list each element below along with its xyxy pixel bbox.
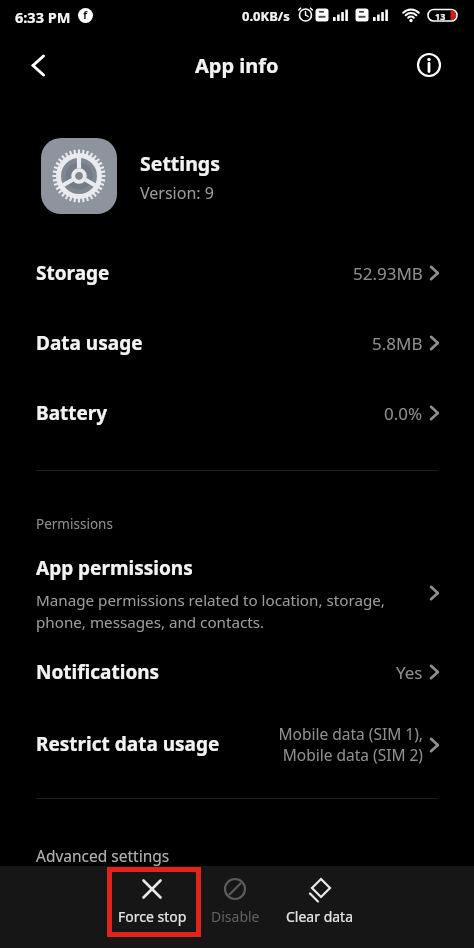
staticText: Mobile data (SIM 1), Mobile data (SIM 2) bbox=[278, 723, 423, 766]
staticText: Advanced settings bbox=[36, 845, 170, 866]
button[interactable]: App permissions bbox=[0, 540, 474, 645]
button[interactable] bbox=[408, 44, 450, 86]
staticText: Battery bbox=[36, 400, 108, 426]
button[interactable]: Disable bbox=[193, 866, 277, 948]
button[interactable]: Force stop bbox=[110, 866, 194, 948]
staticText: Yes bbox=[396, 661, 423, 684]
staticText: Permissions bbox=[36, 515, 113, 533]
staticText: Manage permissions related to location, … bbox=[36, 590, 385, 633]
staticText: 0.0KB/s bbox=[242, 7, 290, 25]
staticText: Settings bbox=[140, 150, 220, 177]
staticText: Clear data bbox=[286, 907, 354, 926]
staticText: 0.0% bbox=[384, 402, 423, 425]
button[interactable]: Clear data bbox=[278, 866, 362, 948]
button[interactable]: Battery bbox=[0, 378, 474, 448]
staticText: 52.93MB bbox=[353, 262, 423, 285]
staticText: 5.8MB bbox=[372, 332, 423, 355]
button[interactable]: Data usage bbox=[0, 308, 474, 378]
button[interactable]: Notifications bbox=[0, 637, 474, 707]
staticText: App permissions bbox=[36, 555, 193, 581]
staticText: Version: 9 bbox=[140, 182, 214, 204]
staticText: 6:33 PM bbox=[15, 7, 71, 27]
staticText: Notifications bbox=[36, 659, 160, 685]
staticText: Data usage bbox=[36, 330, 143, 356]
staticText: f bbox=[83, 8, 88, 22]
staticText: App info bbox=[195, 52, 279, 79]
staticText: Restrict data usage bbox=[36, 731, 220, 757]
staticText: 13 bbox=[435, 10, 446, 22]
staticText: Force stop bbox=[118, 907, 187, 926]
button[interactable]: Restrict data usage bbox=[0, 707, 474, 781]
staticText: Storage bbox=[36, 260, 110, 286]
button[interactable]: Storage bbox=[0, 238, 474, 308]
staticText: Disable bbox=[211, 907, 260, 926]
button[interactable] bbox=[0, 36, 58, 94]
